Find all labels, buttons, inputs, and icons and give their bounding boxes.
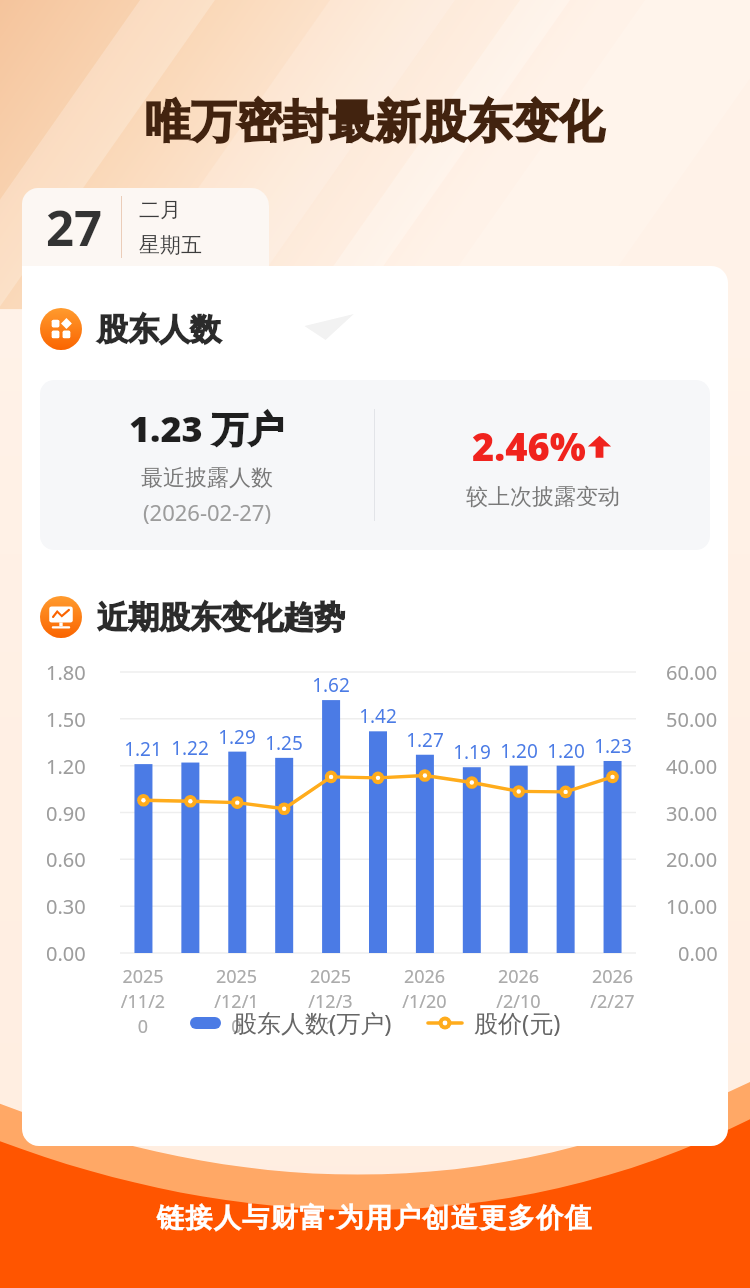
staticText: 60.00 bbox=[666, 659, 718, 686]
staticText: 0.60 bbox=[46, 846, 86, 873]
staticText: 30.00 bbox=[666, 800, 718, 827]
staticText: 1.22 bbox=[171, 735, 209, 761]
button[interactable]: 股价(元) bbox=[428, 1006, 561, 1039]
staticText: 1.27 bbox=[406, 727, 444, 753]
staticText: 1.19 bbox=[453, 739, 491, 765]
staticText: 1.21 bbox=[124, 736, 162, 762]
staticText: 二月 bbox=[139, 197, 181, 223]
staticText: 1.23 bbox=[594, 733, 632, 759]
staticText: 1.29 bbox=[218, 724, 256, 750]
staticText: 唯万密封最新股东变化 bbox=[0, 94, 750, 151]
staticText: 2026/1/20 bbox=[401, 964, 448, 1014]
staticText: 股东人数(万户) bbox=[233, 1006, 392, 1039]
other: 近期股东变化趋势 bbox=[40, 596, 82, 638]
button[interactable]: 近期股东变化趋势 bbox=[22, 596, 728, 638]
button[interactable]: 27 bbox=[22, 188, 269, 266]
staticText: 0.00 bbox=[678, 940, 718, 967]
staticText: 2026/2/10 bbox=[495, 964, 542, 1014]
staticText: 较上次披露变动 bbox=[466, 483, 620, 511]
staticText: 2025/12/31 bbox=[307, 964, 354, 1039]
staticText: 1.23 万户 bbox=[129, 404, 285, 453]
staticText: 1.20 bbox=[547, 738, 585, 764]
staticText: 1.20 bbox=[46, 753, 86, 780]
staticText: 1.80 bbox=[46, 659, 86, 686]
staticText: 0.00 bbox=[46, 940, 86, 967]
staticText: 0.90 bbox=[46, 800, 86, 827]
staticText: 股价(元) bbox=[474, 1006, 561, 1039]
staticText: 1.62 bbox=[312, 672, 350, 698]
button[interactable]: 1.23 万户 bbox=[40, 380, 710, 550]
staticText: (2026-02-27) bbox=[143, 497, 272, 527]
staticText: 1.42 bbox=[359, 703, 397, 729]
staticText: 2026/2/27 bbox=[589, 964, 636, 1014]
staticText: 1.20 bbox=[500, 738, 538, 764]
staticText: 0.30 bbox=[46, 893, 86, 920]
button[interactable]: 股东人数(万户) bbox=[190, 1006, 392, 1039]
staticText: 20.00 bbox=[666, 846, 718, 873]
staticText: 2025/11/20 bbox=[120, 964, 166, 1039]
staticText: 链接人与财富·为用户创造更多价值 bbox=[0, 1198, 750, 1235]
staticText: 股东人数 bbox=[97, 310, 221, 349]
staticText: 1.50 bbox=[46, 706, 86, 733]
staticText: 近期股东变化趋势 bbox=[97, 598, 345, 637]
staticText: 最近披露人数 bbox=[141, 464, 273, 492]
staticText: 40.00 bbox=[666, 753, 718, 780]
button[interactable]: 股东人数 bbox=[22, 308, 728, 350]
staticText: 2.46% bbox=[472, 420, 586, 472]
staticText: 1.25 bbox=[265, 730, 303, 756]
other: 股东人数 bbox=[40, 308, 82, 350]
staticText: 10.00 bbox=[666, 893, 718, 920]
staticText: 星期五 bbox=[139, 232, 202, 258]
staticText: 2025/12/10 bbox=[213, 964, 260, 1039]
staticText: 27 bbox=[46, 194, 103, 261]
staticText: 50.00 bbox=[666, 706, 718, 733]
